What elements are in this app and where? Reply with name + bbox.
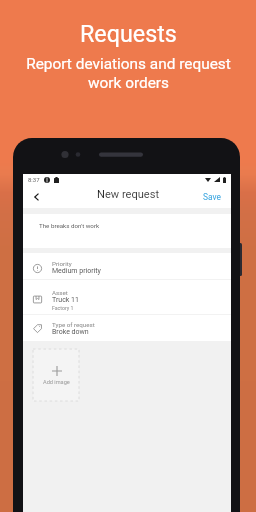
staticText: 8:37: [28, 176, 40, 183]
staticText: Factory 1: [52, 305, 74, 311]
staticText: Asset: [52, 289, 68, 296]
staticText: Add image: [43, 379, 70, 386]
button[interactable]: The breaks don't work: [23, 214, 231, 248]
staticText: Requests: [80, 20, 177, 47]
staticText: Save: [203, 192, 221, 202]
staticText: Priority: [52, 260, 72, 267]
button[interactable]: Priority: [23, 253, 231, 279]
staticText: Truck 11: [52, 296, 79, 304]
staticText: Type of request: [52, 321, 95, 328]
button[interactable]: Add image: [33, 349, 79, 401]
button[interactable]: Back: [27, 185, 45, 208]
button[interactable]: Type of request: [23, 314, 231, 341]
staticText: Broke down: [52, 328, 89, 336]
staticText: Medium priority: [52, 267, 101, 275]
staticText: New request: [97, 188, 160, 201]
button[interactable]: Asset: [23, 279, 231, 313]
staticText: Report deviations and request work order…: [26, 55, 231, 92]
button[interactable]: Save: [195, 185, 231, 208]
staticText: The breaks don't work: [39, 222, 100, 229]
